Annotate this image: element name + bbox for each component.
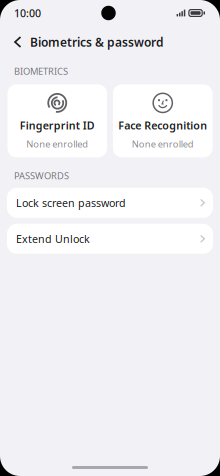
- staticText: Biometrics & password: [30, 34, 164, 50]
- staticText: 10:00: [14, 6, 41, 20]
- staticText: Face Recognition: [118, 118, 207, 133]
- staticText: Lock screen password: [16, 196, 126, 210]
- staticText: PASSWORDS: [14, 169, 69, 182]
- button[interactable]: Back: [14, 36, 22, 47]
- staticText: None enrolled: [26, 138, 88, 150]
- button[interactable]: Face Recognition: [113, 84, 212, 157]
- staticText: Extend Unlock: [16, 232, 90, 246]
- staticText: BIOMETRICS: [14, 65, 68, 77]
- button[interactable]: Fingerprint ID: [7, 84, 107, 157]
- button[interactable]: Lock screen password: [7, 188, 213, 218]
- staticText: Fingerprint ID: [20, 118, 95, 133]
- staticText: None enrolled: [132, 138, 194, 150]
- button[interactable]: Extend Unlock: [7, 224, 213, 254]
